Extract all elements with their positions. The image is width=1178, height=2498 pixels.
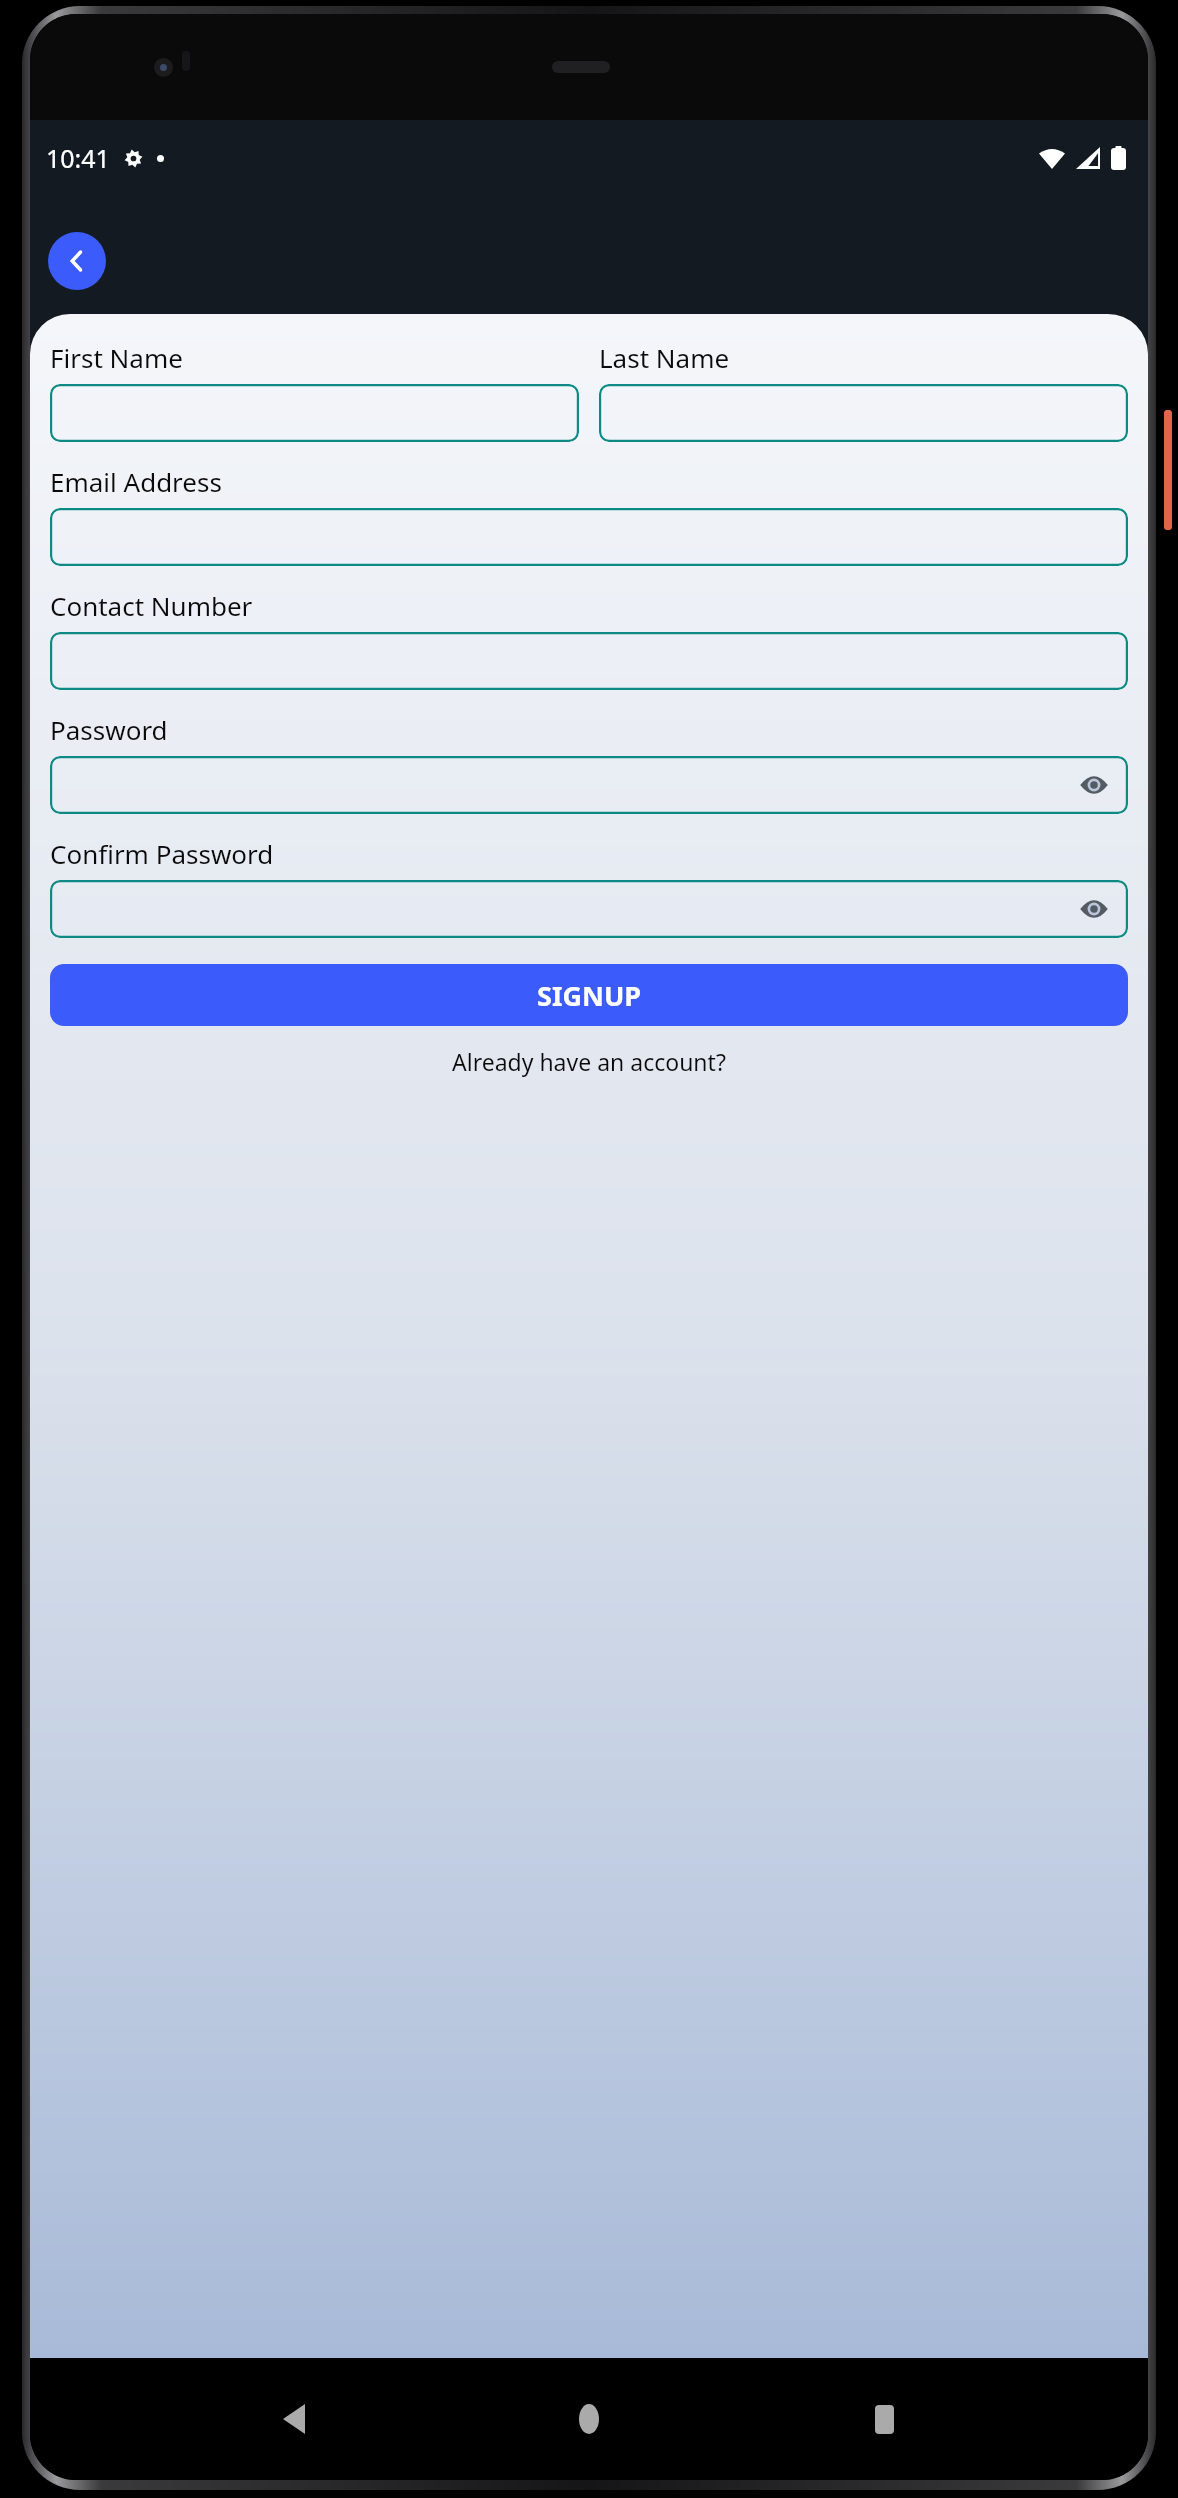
button[interactable]: Recent apps (853, 2388, 915, 2450)
staticText: Last Name (599, 340, 730, 375)
staticText: Password (50, 712, 168, 747)
button[interactable]: Show password (1074, 765, 1114, 805)
button[interactable] (50, 508, 1128, 566)
staticText: Confirm Password (50, 836, 274, 871)
button[interactable] (50, 632, 1128, 690)
staticText: Contact Number (50, 588, 253, 623)
button[interactable]: Back (48, 232, 106, 290)
button[interactable] (599, 384, 1128, 442)
staticText: Email Address (50, 464, 222, 499)
button[interactable]: Show password (50, 756, 1128, 814)
button[interactable]: Home (558, 2388, 620, 2450)
button[interactable] (50, 384, 579, 442)
button[interactable]: Show password (50, 880, 1128, 938)
button[interactable]: Show password (1074, 889, 1114, 929)
staticText: SIGNUP (537, 977, 642, 1014)
staticText: 10:41 (46, 141, 110, 175)
staticText: First Name (50, 340, 183, 375)
button[interactable]: SIGNUP (50, 964, 1128, 1026)
button[interactable]: Already have an account? (50, 1046, 1128, 1077)
staticText: Already have an account? (452, 1046, 726, 1077)
button[interactable]: Back (263, 2388, 325, 2450)
